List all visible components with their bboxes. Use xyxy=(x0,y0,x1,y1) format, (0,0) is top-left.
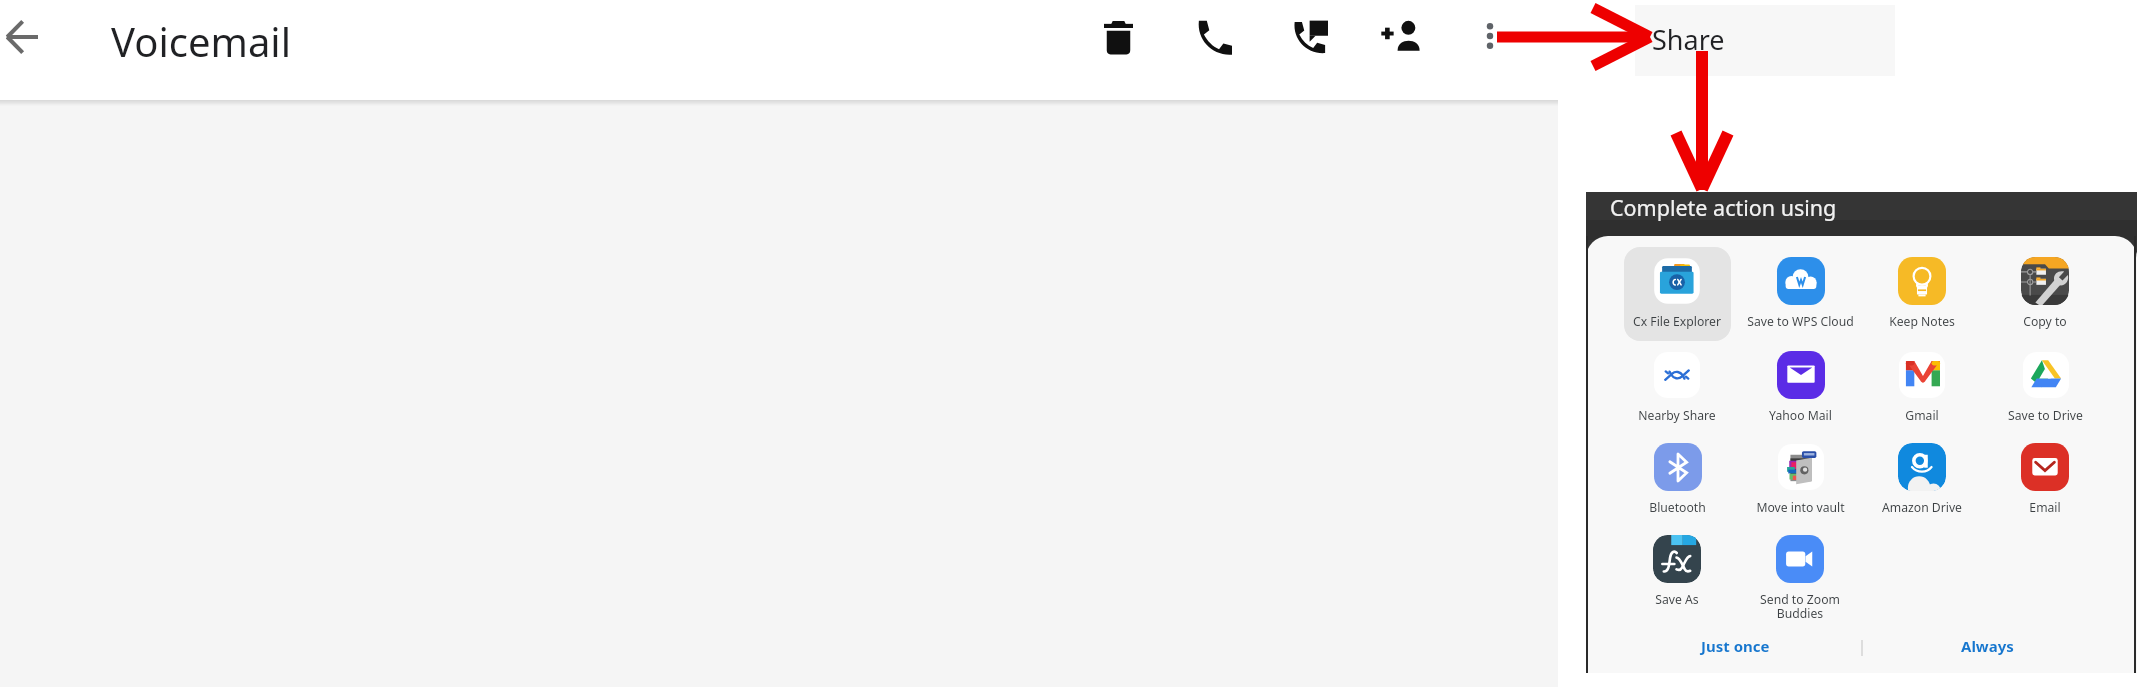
staticText: Share xyxy=(1652,21,1725,58)
button[interactable]: Send to Zoom Buddies xyxy=(1745,535,1855,627)
staticText: Amazon Drive xyxy=(1882,499,1962,516)
button[interactable]: Back xyxy=(0,9,44,65)
button[interactable]: Amazon Drive xyxy=(1867,443,1977,535)
button[interactable]: Copy to xyxy=(1990,257,2100,349)
staticText: Email xyxy=(2029,499,2061,516)
button[interactable]: Add contact xyxy=(1370,6,1434,66)
staticText: Send to Zoom Buddies xyxy=(1760,591,1840,621)
button[interactable]: Just once xyxy=(1610,620,1860,671)
button[interactable]: More options xyxy=(1464,8,1516,64)
button[interactable]: Keep Notes xyxy=(1867,257,1977,349)
staticText: Always xyxy=(1961,636,2014,656)
staticText: Save to Drive xyxy=(2008,407,2083,424)
staticText: Save As xyxy=(1655,591,1699,608)
staticText: Just once xyxy=(1701,636,1770,656)
staticText: Voicemail xyxy=(111,14,291,68)
staticText: Keep Notes xyxy=(1889,313,1955,330)
button[interactable]: Yahoo Mail xyxy=(1745,351,1855,443)
button[interactable]: Cx File Explorer xyxy=(1622,257,1732,349)
staticText: Save to WPS Cloud xyxy=(1747,313,1854,330)
button[interactable]: Bluetooth xyxy=(1622,443,1732,535)
staticText: Bluetooth xyxy=(1649,499,1706,516)
button[interactable]: Gmail xyxy=(1867,351,1977,443)
button[interactable]: Save to WPS Cloud xyxy=(1745,257,1855,349)
button[interactable]: Delete xyxy=(1086,7,1150,67)
button[interactable]: Move into vault xyxy=(1745,443,1855,535)
button[interactable]: Always xyxy=(1862,620,2112,671)
button[interactable]: Call and message xyxy=(1278,7,1342,67)
staticText: Nearby Share xyxy=(1638,407,1716,424)
staticText: Cx File Explorer xyxy=(1633,313,1721,330)
staticText: Gmail xyxy=(1905,407,1939,424)
button[interactable]: Call xyxy=(1182,7,1246,67)
staticText: Copy to xyxy=(2023,313,2067,330)
staticText: Yahoo Mail xyxy=(1769,407,1832,424)
button[interactable]: Email xyxy=(1990,443,2100,535)
button[interactable]: Share xyxy=(1635,5,1895,76)
button[interactable]: Save to Drive xyxy=(1990,351,2100,443)
button[interactable]: Save As xyxy=(1622,535,1732,627)
staticText: Move into vault xyxy=(1756,499,1845,516)
staticText: Complete action using xyxy=(1610,193,1837,222)
button[interactable]: Nearby Share xyxy=(1622,351,1732,443)
